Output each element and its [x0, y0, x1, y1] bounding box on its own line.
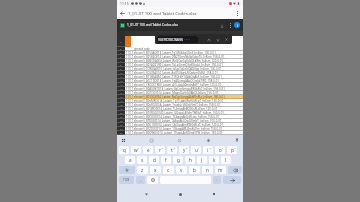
button[interactable]: Previous result	[204, 35, 213, 44]
staticText: 110_1elecomS_B1180A0B4_Latam_T1XQrkH1QAb…	[126, 75, 223, 79]
button[interactable]: GIF	[148, 137, 154, 143]
button[interactable]: i	[203, 146, 213, 154]
staticText: 18	[120, 104, 123, 107]
staticText: o	[219, 147, 222, 153]
staticText: g	[177, 157, 180, 163]
button[interactable]: %5EPICVBCIRAHN	[157, 36, 198, 43]
staticText: c	[167, 167, 170, 173]
staticText: 110_1elecomS_TCWOA0010_Latam_n0gvTqGnGQA…	[126, 67, 223, 71]
button[interactable]: n	[202, 166, 213, 174]
staticText: 110_1elecomS_XOL0SA014_Latam_AeOSUbqsU5O…	[126, 71, 220, 75]
staticText: 11:15	[120, 1, 129, 6]
button[interactable]: x	[150, 166, 161, 174]
button[interactable]: m	[215, 166, 226, 174]
staticText: i	[237, 23, 238, 28]
staticText: 9	[222, 147, 224, 150]
staticText: 21	[120, 116, 123, 119]
button[interactable]: Comma	[136, 176, 145, 184]
button[interactable]: y	[179, 146, 189, 154]
staticText: 2 of 3	[184, 38, 191, 41]
button[interactable]: Symbols	[119, 176, 134, 184]
button[interactable]: Shift	[119, 166, 135, 174]
button[interactable]	[147, 176, 158, 184]
staticText: 5	[174, 147, 176, 150]
staticText: 1_01-XT 100 and Tablet Codes.xlsx	[127, 23, 178, 27]
staticText: u	[195, 147, 198, 153]
button[interactable]: w	[131, 146, 141, 154]
button[interactable]: o	[215, 146, 225, 154]
button[interactable]: z	[137, 166, 148, 174]
staticText: 15	[120, 92, 123, 95]
button[interactable]: a	[125, 156, 135, 164]
staticText: 9	[120, 68, 122, 71]
button[interactable]: More options	[232, 8, 243, 19]
button[interactable]: c	[163, 166, 174, 174]
button[interactable]: Enter	[223, 176, 241, 184]
button[interactable]: Settings	[205, 137, 211, 143]
staticText: 7	[120, 60, 122, 63]
button[interactable]: d	[149, 156, 159, 164]
button[interactable]: j	[197, 156, 207, 164]
button[interactable]: s	[137, 156, 147, 164]
button[interactable]: e	[143, 146, 153, 154]
button[interactable]: Backspace	[228, 166, 242, 174]
staticText: 1_01-XT 100 and Tablet Codes.xlsx	[128, 10, 197, 16]
button[interactable]: Voice input	[234, 137, 240, 143]
button[interactable]: g	[173, 156, 183, 164]
staticText: 110_1elecomS_B0AGRkTO14_Latam_0qCqrSmqqs…	[126, 87, 227, 91]
staticText: 110_1elecomS_B01WO0014_Latam_TUmqqAkBQ0G…	[126, 107, 219, 111]
staticText: 1	[126, 147, 128, 150]
staticText: 3	[120, 40, 122, 43]
button[interactable]: Keyboard features	[120, 137, 126, 143]
staticText: 7	[198, 147, 200, 150]
staticText: 8	[210, 147, 212, 150]
button[interactable]: v	[176, 166, 187, 174]
staticText: h	[189, 157, 192, 163]
staticText: 110_1elecomS_B1ZDO0014_Latam_1ObqqAWLQmR…	[126, 127, 224, 131]
staticText: r	[159, 147, 161, 153]
button[interactable]: Sticker	[176, 137, 182, 143]
staticText: 13	[120, 84, 123, 87]
staticText: 20	[120, 112, 123, 115]
button[interactable]: b	[189, 166, 200, 174]
button[interactable]: Back	[141, 189, 151, 199]
staticText: 19	[120, 108, 123, 111]
staticText: 11	[120, 76, 123, 79]
staticText: d	[153, 157, 156, 163]
staticText: 110_1elecomS_B010GX0S4_Latam_NqCqrGmqqAb…	[126, 95, 226, 99]
button[interactable]: Download	[217, 21, 226, 30]
staticText: 110_1elecomS_B0G1OR014_Latam_QbGqqAknRWG…	[126, 123, 225, 127]
button[interactable]: p	[227, 146, 237, 154]
staticText: 6	[120, 56, 122, 59]
button[interactable]: r	[155, 146, 165, 154]
staticText: 110_1elecomS_B01ADZ1R0_Latam_1bLsiGnmQ3j…	[126, 63, 225, 67]
button[interactable]: Home	[175, 189, 185, 199]
staticText: n	[206, 167, 209, 173]
button[interactable]: More options	[226, 21, 234, 29]
button[interactable]: Navigate up	[117, 8, 128, 19]
staticText: 110_1elecomS_BO1D00014_Latam_MqqnOwSiGOA…	[126, 91, 220, 95]
button[interactable]: f	[161, 156, 171, 164]
button[interactable]: u	[191, 146, 201, 154]
button[interactable]: k	[209, 156, 219, 164]
button[interactable]: Period	[213, 176, 221, 184]
button[interactable]: Recent apps	[209, 189, 219, 199]
button[interactable]: Close find bar	[222, 35, 231, 44]
staticText: ?123	[123, 178, 130, 182]
staticText: y	[183, 147, 186, 153]
staticText: 5	[120, 52, 122, 55]
staticText: general code	[134, 47, 150, 51]
staticText: z	[141, 167, 144, 173]
button[interactable]: t	[167, 146, 177, 154]
button[interactable]: l	[221, 156, 231, 164]
button[interactable]: h	[185, 156, 195, 164]
staticText: i	[207, 147, 209, 153]
staticText: 25	[120, 132, 123, 135]
staticText: 110_1elecomS_B150AO014_Latam_1g1WzSikq0O…	[126, 51, 218, 55]
button[interactable]: Account	[234, 22, 240, 28]
button[interactable]: Next result	[213, 35, 222, 44]
staticText: w	[134, 147, 138, 153]
staticText: v	[180, 167, 183, 173]
button[interactable]: q	[119, 146, 129, 154]
